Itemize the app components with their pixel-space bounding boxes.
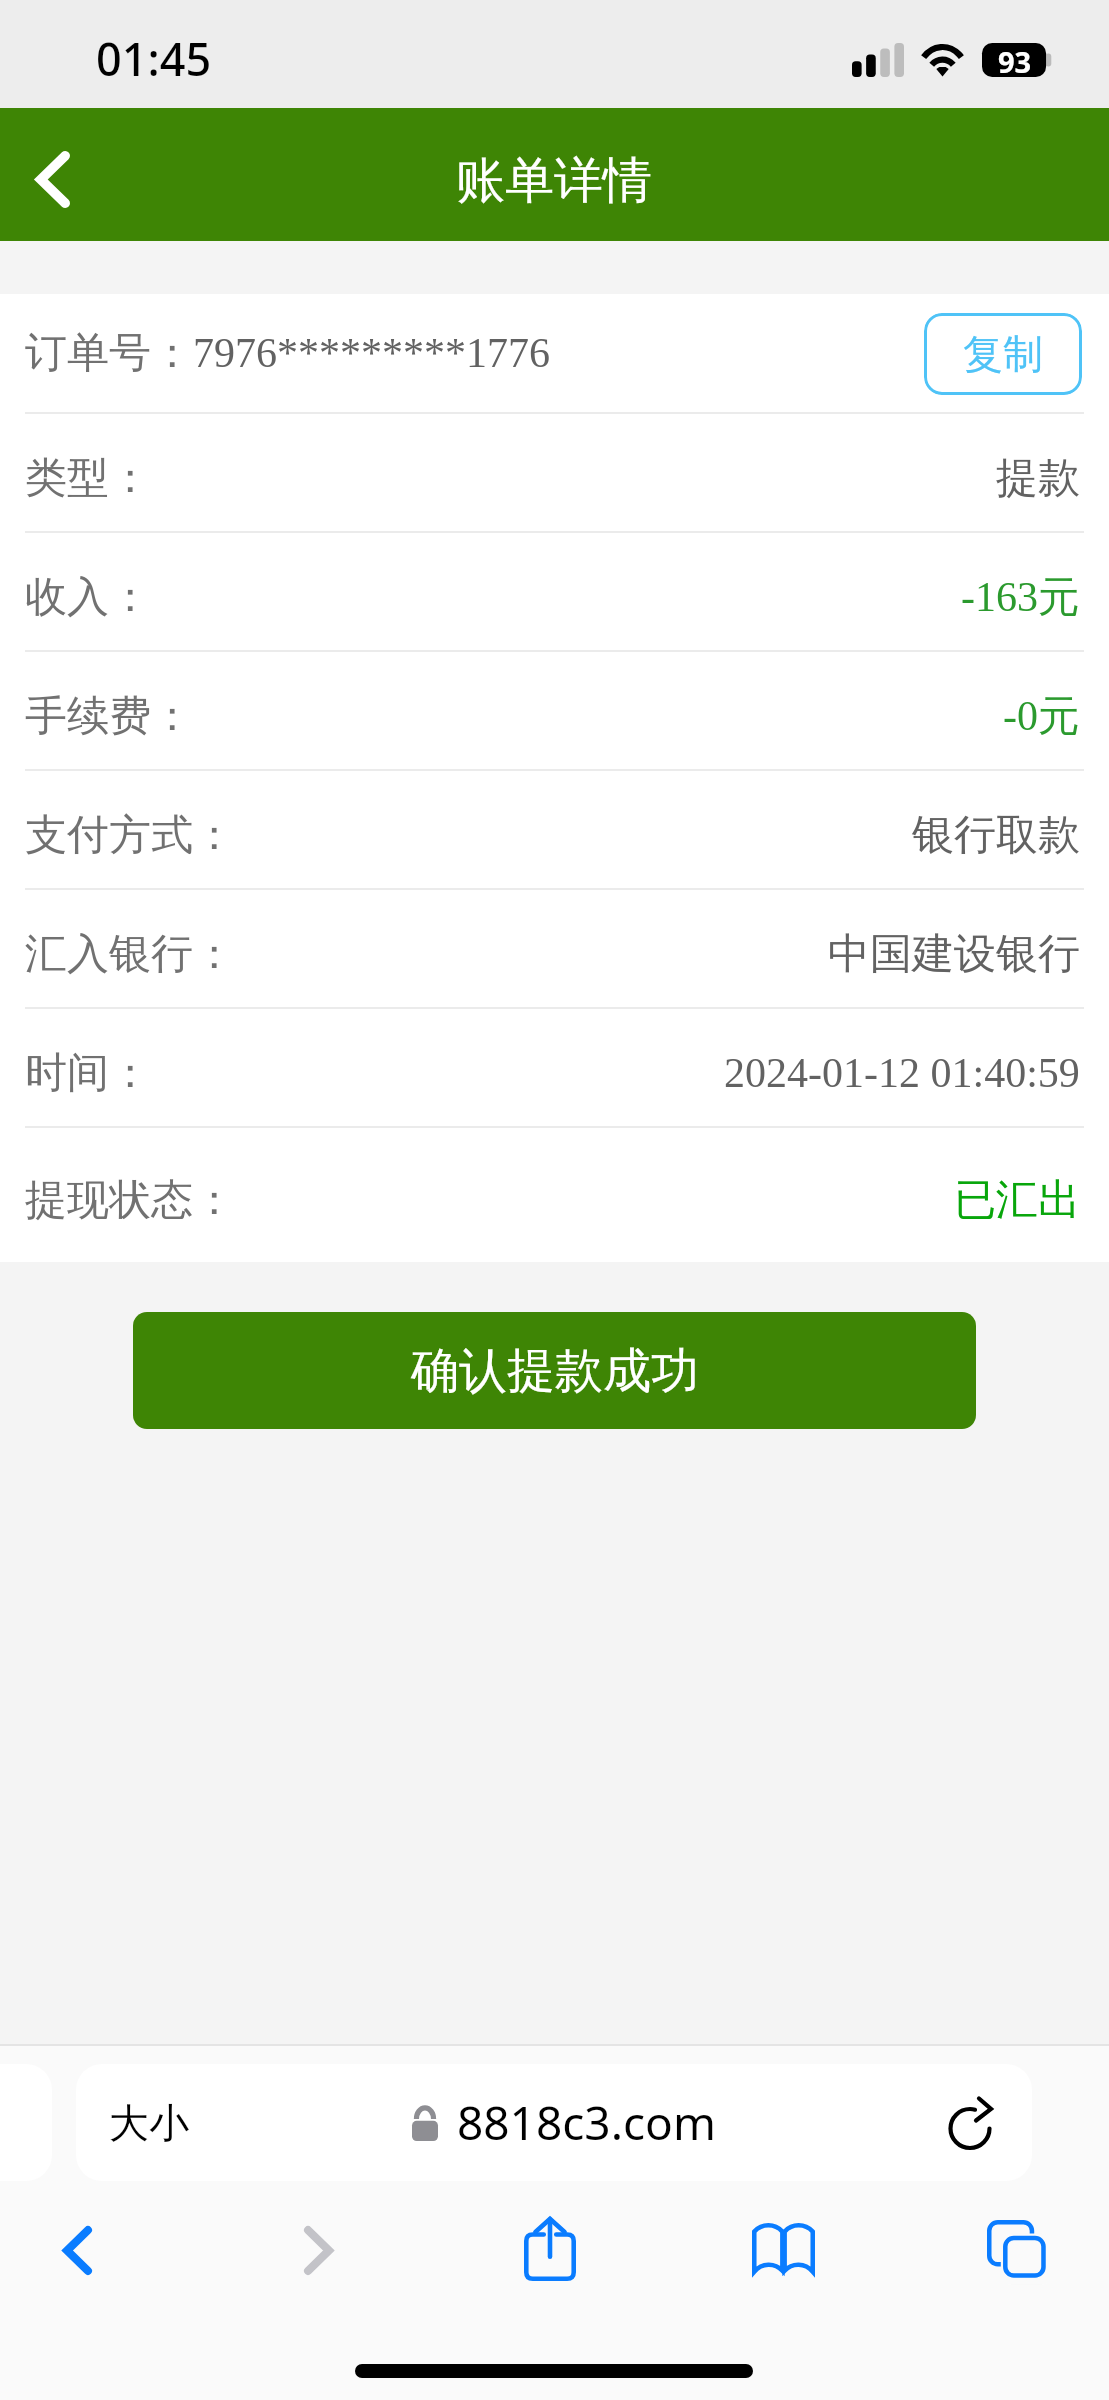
- staticText: 类型：: [25, 452, 151, 505]
- button[interactable]: 大小: [76, 2064, 1032, 2181]
- staticText: -0: [1003, 693, 1038, 740]
- button[interactable]: 提现状态：: [0, 1128, 1109, 1262]
- staticText: 01:45: [96, 28, 212, 89]
- button[interactable]: Tabs: [962, 2195, 1072, 2305]
- button[interactable]: 类型：: [0, 414, 1109, 533]
- button[interactable]: 汇入银行：: [0, 890, 1109, 1009]
- staticText: 收入：: [25, 571, 151, 624]
- button[interactable]: 复制: [924, 313, 1082, 395]
- staticText: 大小: [109, 2098, 189, 2148]
- button[interactable]: Bookmarks: [728, 2192, 838, 2302]
- button[interactable]: Reload: [942, 2091, 1006, 2155]
- staticText: 93: [998, 42, 1032, 76]
- staticText: 时间：: [25, 1047, 151, 1100]
- staticText: 元: [1038, 571, 1080, 624]
- staticText: 手续费：: [25, 690, 193, 743]
- staticText: 支付方式：: [25, 809, 235, 862]
- staticText: 已汇出: [954, 1174, 1080, 1227]
- button[interactable]: 确认提款成功: [133, 1312, 976, 1429]
- button[interactable]: 手续费：: [0, 652, 1109, 771]
- button[interactable]: Back: [22, 2195, 132, 2305]
- staticText: 中国建设银行: [828, 928, 1080, 981]
- button[interactable]: Back: [0, 108, 130, 241]
- button[interactable]: Forward: [263, 2195, 373, 2305]
- staticText: 汇入银行：: [25, 928, 235, 981]
- staticText: 账单详情: [456, 150, 652, 212]
- button[interactable]: 时间：: [0, 1009, 1109, 1128]
- staticText: 提款: [996, 452, 1080, 505]
- button[interactable]: 订单号：: [0, 294, 1109, 414]
- staticText: 复制: [963, 329, 1043, 379]
- staticText: 提现状态：: [25, 1174, 235, 1227]
- staticText: 订单号：: [25, 327, 193, 380]
- staticText: 7976*********1776: [193, 330, 550, 377]
- staticText: -163: [961, 574, 1038, 621]
- button[interactable]: 支付方式：: [0, 771, 1109, 890]
- staticText: 银行取款: [912, 809, 1080, 862]
- staticText: 元: [1038, 690, 1080, 743]
- button[interactable]: Share: [495, 2193, 605, 2303]
- staticText: 2024-01-12 01:40:59: [724, 1050, 1080, 1097]
- button[interactable]: 收入：: [0, 533, 1109, 652]
- staticText: 确认提款成功: [411, 1341, 699, 1401]
- staticText: 8818c3.com: [457, 2091, 716, 2154]
